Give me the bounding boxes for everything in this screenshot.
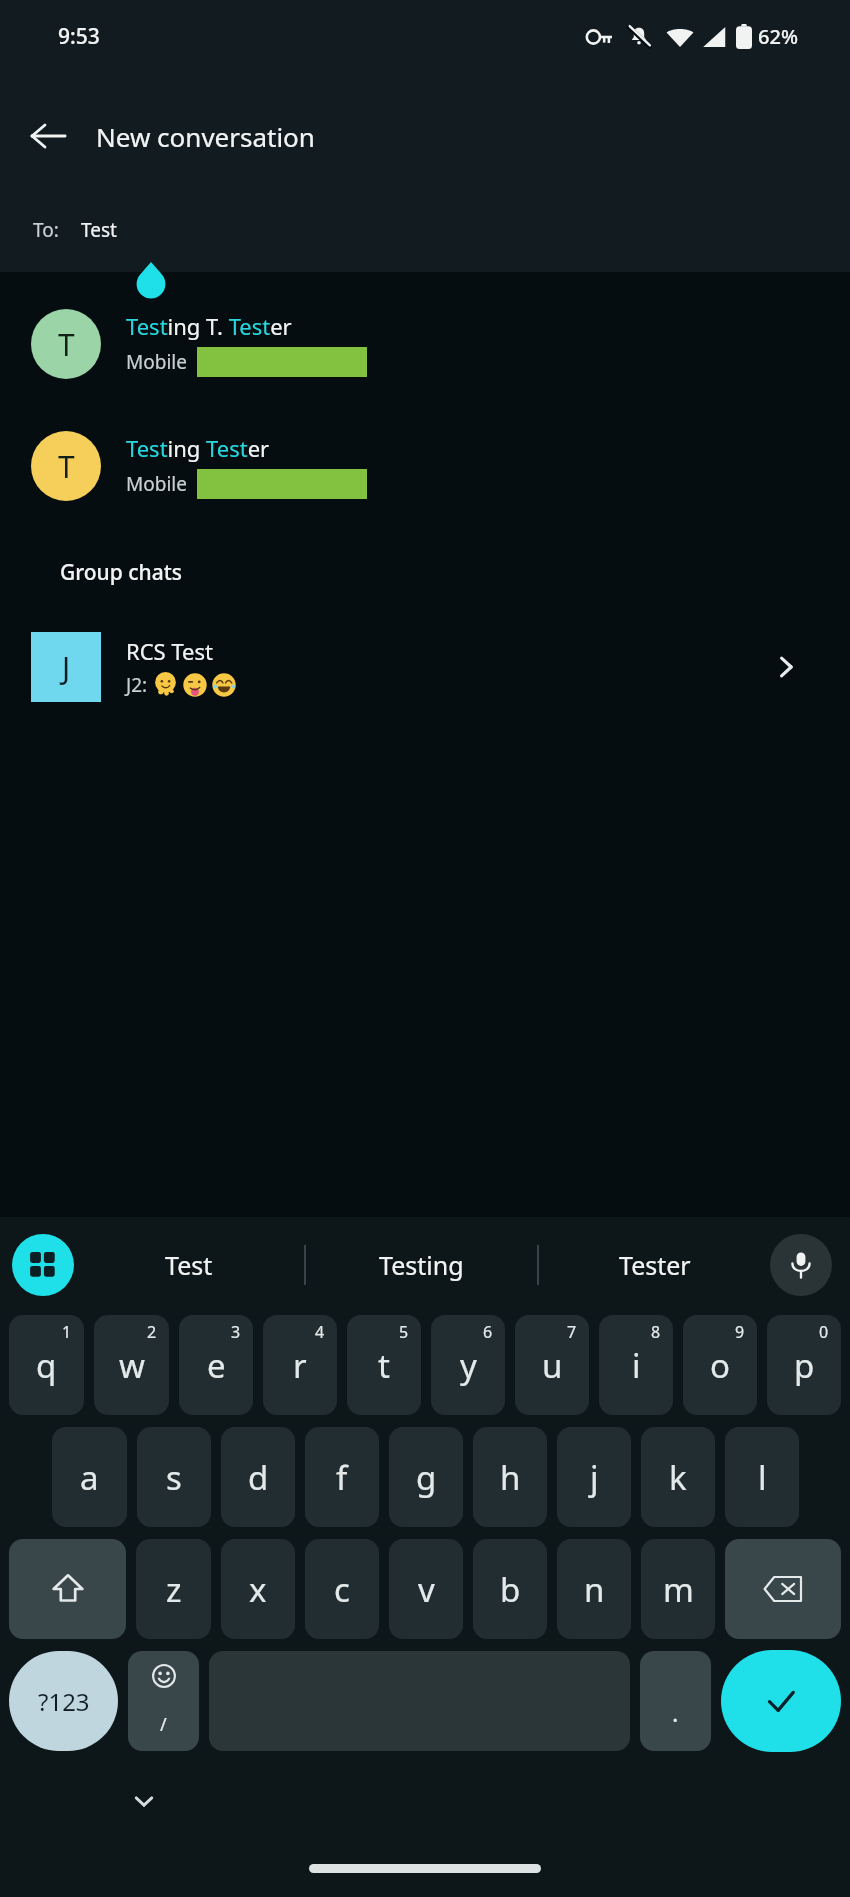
staticText: . (672, 1696, 679, 1729)
staticText: y (460, 1343, 477, 1388)
staticText: g (416, 1455, 437, 1500)
staticText: 7 (567, 1321, 577, 1343)
button[interactable]: e (179, 1315, 253, 1415)
staticText: 0 (819, 1321, 829, 1343)
button[interactable]: T (0, 294, 850, 394)
staticText: 5 (399, 1321, 409, 1343)
staticText: b (500, 1567, 521, 1612)
staticText: 4 (315, 1321, 325, 1343)
staticText: Tester (619, 1248, 691, 1282)
button[interactable]: v (389, 1539, 463, 1639)
staticText: x (249, 1567, 267, 1612)
button[interactable]: Send (721, 1650, 841, 1752)
button[interactable]: Shift (9, 1539, 126, 1639)
staticText: RCS Test (126, 636, 213, 666)
button[interactable]: . (640, 1651, 711, 1751)
button[interactable]: q (9, 1315, 84, 1415)
button[interactable]: c (305, 1539, 379, 1639)
button[interactable]: t (347, 1315, 421, 1415)
button[interactable]: l (725, 1427, 799, 1527)
button[interactable]: n (557, 1539, 631, 1639)
button[interactable]: ?123 (9, 1651, 118, 1751)
button[interactable]: w (94, 1315, 169, 1415)
staticText: Testing T. Tester (126, 311, 292, 341)
staticText: J (62, 647, 71, 688)
staticText: 62% (758, 23, 798, 50)
staticText: e (207, 1343, 226, 1388)
button[interactable]: g (389, 1427, 463, 1527)
button[interactable]: u (515, 1315, 589, 1415)
staticText: r (293, 1343, 307, 1388)
button[interactable]: f (305, 1427, 379, 1527)
staticText: i (632, 1343, 641, 1388)
staticText: h (500, 1455, 521, 1500)
staticText: p (794, 1343, 815, 1388)
button[interactable]: y (431, 1315, 505, 1415)
button[interactable]: h (473, 1427, 547, 1527)
staticText: ?123 (38, 1685, 90, 1718)
staticText: m (663, 1567, 694, 1612)
button[interactable]: Voice input (770, 1234, 832, 1296)
staticText: c (334, 1567, 350, 1612)
button[interactable]: Emoji (128, 1651, 199, 1751)
button[interactable]: Back (20, 108, 76, 164)
staticText: u (542, 1343, 563, 1388)
staticText: 8 (651, 1321, 661, 1343)
button[interactable]: b (473, 1539, 547, 1639)
staticText: o (710, 1343, 730, 1388)
staticText: a (80, 1455, 99, 1500)
staticText: 1 (62, 1321, 72, 1343)
button[interactable]: i (599, 1315, 673, 1415)
staticText: s (166, 1455, 182, 1500)
staticText: 6 (483, 1321, 493, 1343)
staticText: Testing (379, 1248, 464, 1282)
button[interactable]: x (221, 1539, 295, 1639)
button[interactable]: Test (74, 1217, 304, 1313)
button[interactable]: d (221, 1427, 295, 1527)
button[interactable]: j (557, 1427, 631, 1527)
button[interactable]: J (0, 617, 850, 717)
button[interactable]: z (136, 1539, 211, 1639)
button[interactable]: a (52, 1427, 127, 1527)
staticText: / (160, 1712, 167, 1737)
button[interactable]: o (683, 1315, 757, 1415)
staticText: New conversation (96, 119, 315, 154)
staticText: w (119, 1343, 145, 1388)
staticText: Mobile (126, 349, 187, 375)
staticText: n (584, 1567, 605, 1612)
staticText: Test (165, 1248, 213, 1282)
button[interactable]: Backspace (725, 1539, 841, 1639)
staticText: Testing Tester (126, 433, 270, 463)
staticText: f (336, 1455, 348, 1500)
button[interactable]: Hide keyboard (122, 1779, 166, 1823)
staticText: 9:53 (58, 22, 100, 51)
staticText: To: (33, 217, 59, 243)
button[interactable]: k (641, 1427, 715, 1527)
staticText: k (669, 1455, 687, 1500)
staticText: 9 (735, 1321, 745, 1343)
staticText: T (58, 324, 75, 365)
staticText: q (36, 1343, 57, 1388)
button[interactable]: Keyboard tools (12, 1234, 74, 1296)
staticText: 2 (147, 1321, 157, 1343)
staticText: j (590, 1455, 599, 1500)
staticText: 3 (231, 1321, 241, 1343)
staticText: t (378, 1343, 390, 1388)
button[interactable]: r (263, 1315, 337, 1415)
button[interactable]: T (0, 416, 850, 516)
staticText: T (58, 446, 75, 487)
button[interactable]: p (767, 1315, 841, 1415)
staticText: d (248, 1455, 269, 1500)
staticText: Group chats (60, 558, 182, 587)
staticText: l (758, 1455, 767, 1500)
staticText: J2: (126, 672, 153, 698)
staticText: Test (81, 217, 117, 243)
button[interactable]: Tester (539, 1217, 770, 1313)
button[interactable]: m (641, 1539, 715, 1639)
button[interactable]: s (137, 1427, 211, 1527)
staticText: z (166, 1567, 182, 1612)
button[interactable]: Testing (306, 1217, 537, 1313)
staticText: Mobile (126, 471, 187, 497)
button[interactable]: Open group chat (762, 643, 810, 691)
